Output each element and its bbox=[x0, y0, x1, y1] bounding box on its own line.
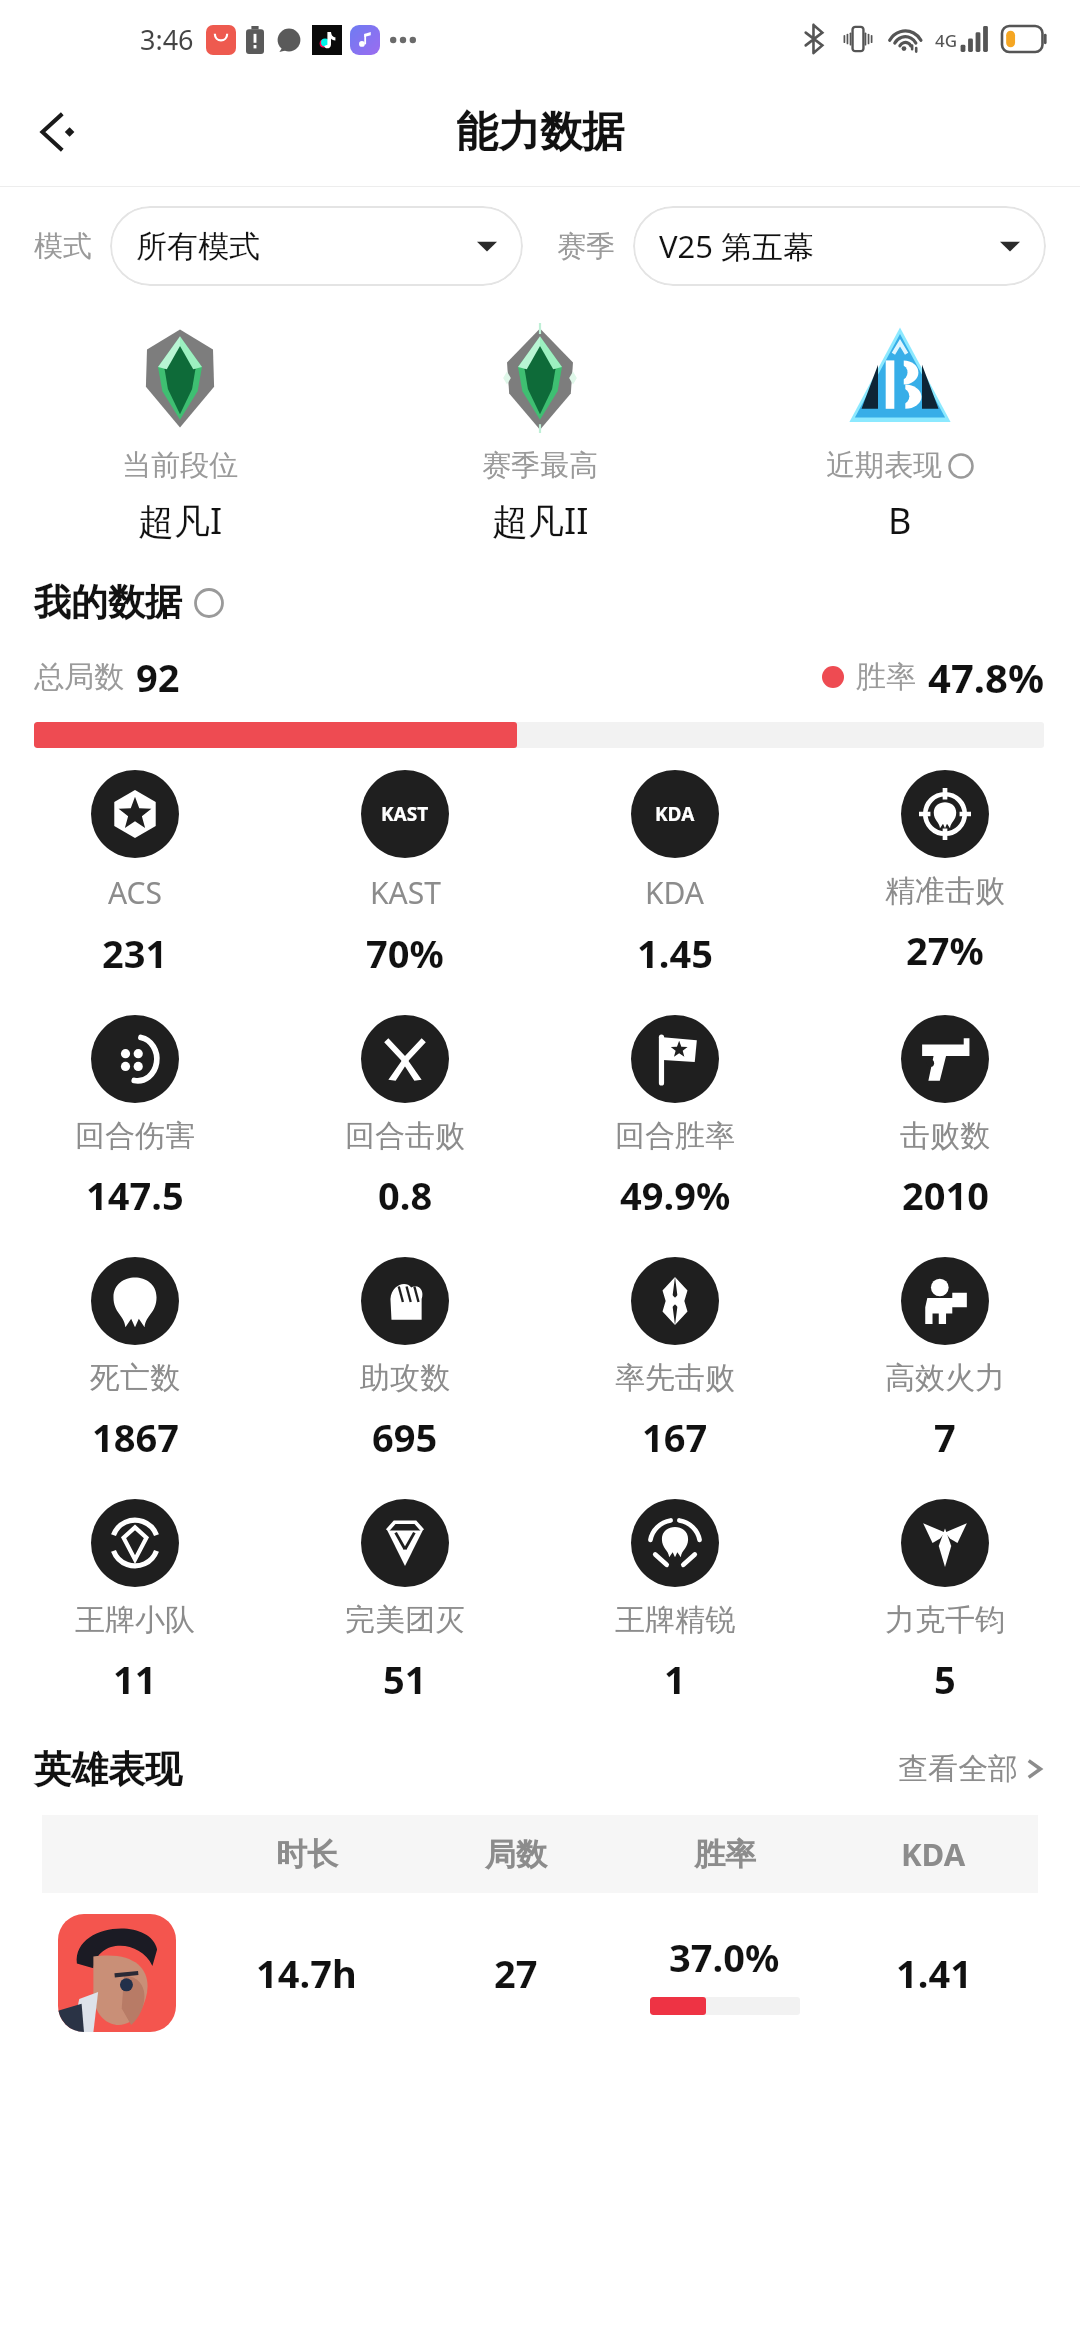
staticText: 7 bbox=[934, 1411, 956, 1463]
button[interactable]: Back bbox=[20, 96, 92, 168]
button[interactable]: 死亡数 bbox=[0, 1257, 270, 1463]
staticText: V25 第五幕 bbox=[659, 225, 815, 267]
staticText: 能力数据 bbox=[456, 106, 624, 159]
staticText: 27 bbox=[494, 1947, 538, 1999]
staticText: 超凡II bbox=[492, 496, 589, 545]
button[interactable]: 完美团灭 bbox=[270, 1499, 540, 1705]
staticText: ACS bbox=[108, 872, 162, 913]
staticText: 5 bbox=[934, 1653, 956, 1705]
staticText: 死亡数 bbox=[90, 1359, 180, 1397]
button[interactable]: 助攻数 bbox=[270, 1257, 540, 1463]
staticText: 力克千钧 bbox=[885, 1601, 1005, 1639]
staticText: 赛季最高 bbox=[482, 447, 598, 484]
staticText: 1867 bbox=[92, 1411, 179, 1463]
button[interactable]: 王牌小队 bbox=[0, 1499, 270, 1705]
staticText: 49.9% bbox=[620, 1169, 731, 1221]
staticText: 王牌精锐 bbox=[615, 1601, 735, 1639]
staticText: 回合胜率 bbox=[615, 1117, 735, 1155]
staticText: 47.8% bbox=[928, 650, 1044, 704]
button[interactable]: 王牌精锐 bbox=[540, 1499, 810, 1705]
staticText: 695 bbox=[372, 1411, 438, 1463]
staticText: 167 bbox=[642, 1411, 708, 1463]
staticText: 胜率 bbox=[694, 1835, 756, 1874]
button[interactable]: 高效火力 bbox=[810, 1257, 1080, 1463]
staticText: 高效火力 bbox=[885, 1359, 1005, 1397]
button[interactable]: 回合击败 bbox=[270, 1015, 540, 1221]
staticText: 回合伤害 bbox=[75, 1117, 195, 1155]
staticText: 回合击败 bbox=[345, 1117, 465, 1155]
button[interactable]: 回合胜率 bbox=[540, 1015, 810, 1221]
staticText: 完美团灭 bbox=[345, 1601, 465, 1639]
button[interactable]: ACS bbox=[0, 770, 270, 979]
staticText: KDA bbox=[645, 872, 705, 913]
staticText: 1 bbox=[664, 1653, 686, 1705]
staticText: 231 bbox=[102, 927, 168, 979]
staticText: 当前段位 bbox=[122, 447, 238, 484]
button[interactable]: 力克千钧 bbox=[810, 1499, 1080, 1705]
button[interactable]: 精准击败 bbox=[810, 770, 1080, 976]
staticText: KDA bbox=[655, 801, 695, 827]
staticText: 92 bbox=[136, 651, 180, 703]
staticText: 率先击败 bbox=[615, 1359, 735, 1397]
button[interactable]: Help bbox=[192, 586, 226, 620]
staticText: 近期表现 bbox=[826, 447, 942, 484]
staticText: 147.5 bbox=[86, 1169, 184, 1221]
staticText: 70% bbox=[366, 927, 444, 979]
staticText: 1.41 bbox=[896, 1947, 972, 1999]
staticText: 模式 bbox=[34, 228, 92, 265]
staticText: 我的数据 bbox=[34, 579, 182, 626]
button[interactable]: KAST bbox=[270, 770, 540, 979]
staticText: 14.7h bbox=[256, 1947, 357, 1999]
button[interactable]: 击败数 bbox=[810, 1015, 1080, 1221]
staticText: 超凡I bbox=[138, 496, 223, 545]
button[interactable]: 近期表现 bbox=[720, 323, 1080, 545]
staticText: 2010 bbox=[902, 1169, 989, 1221]
button[interactable]: KDA bbox=[540, 770, 810, 979]
staticText: 0.8 bbox=[378, 1169, 433, 1221]
button[interactable]: V25 第五幕 bbox=[633, 206, 1046, 286]
staticText: 王牌小队 bbox=[75, 1601, 195, 1639]
staticText: B bbox=[888, 496, 912, 545]
staticText: 击败数 bbox=[900, 1117, 990, 1155]
button[interactable]: 当前段位 bbox=[0, 323, 360, 545]
staticText: KDA bbox=[901, 1833, 966, 1875]
staticText: KAST bbox=[370, 872, 441, 913]
staticText: 总局数 bbox=[34, 658, 124, 696]
staticText: 51 bbox=[383, 1653, 427, 1705]
staticText: 所有模式 bbox=[136, 227, 260, 266]
button[interactable]: 查看全部 bbox=[892, 1744, 1050, 1794]
staticText: KAST bbox=[381, 801, 429, 827]
staticText: 27% bbox=[906, 924, 984, 976]
staticText: 1.45 bbox=[637, 927, 713, 979]
staticText: 赛季 bbox=[557, 228, 615, 265]
staticText: 英雄表现 bbox=[34, 1746, 182, 1793]
button[interactable]: 赛季最高 bbox=[360, 323, 720, 545]
staticText: 胜率 bbox=[856, 658, 916, 696]
button[interactable]: 14.7h bbox=[42, 1893, 1038, 2053]
staticText: 时长 bbox=[276, 1835, 338, 1874]
button[interactable]: 回合伤害 bbox=[0, 1015, 270, 1221]
staticText: 助攻数 bbox=[360, 1359, 450, 1397]
staticText: 精准击败 bbox=[885, 872, 1005, 910]
staticText: 局数 bbox=[485, 1835, 547, 1874]
button[interactable]: 所有模式 bbox=[110, 206, 523, 286]
staticText: 3:46 bbox=[140, 21, 194, 58]
staticText: 查看全部 bbox=[898, 1750, 1018, 1788]
staticText: 37.0% bbox=[669, 1931, 780, 1983]
staticText: 11 bbox=[113, 1653, 157, 1705]
staticText: 4G bbox=[935, 29, 958, 52]
button[interactable]: 率先击败 bbox=[540, 1257, 810, 1463]
